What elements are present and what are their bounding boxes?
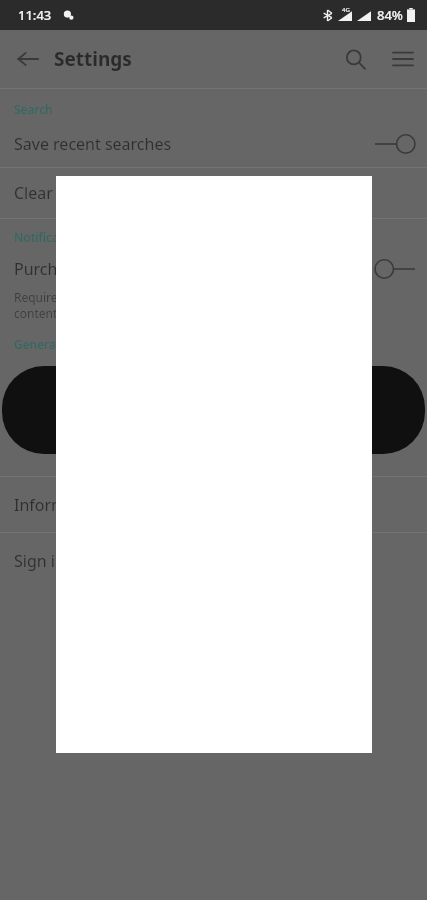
staticText: 84% bbox=[377, 6, 403, 24]
button[interactable]: Purchases bbox=[0, 249, 427, 289]
button[interactable]: Back bbox=[6, 37, 50, 81]
staticText: Search bbox=[14, 101, 53, 117]
staticText: Save recent searches bbox=[14, 133, 172, 155]
staticText: Required to receive notifications about … bbox=[14, 289, 295, 322]
button[interactable]: Information bbox=[0, 477, 427, 532]
staticText: General bbox=[14, 336, 59, 352]
staticText: Settings bbox=[54, 46, 132, 72]
button[interactable]: Save recent searches bbox=[0, 121, 427, 167]
staticText: Purchases bbox=[14, 258, 91, 280]
staticText: Clear recent searches bbox=[14, 182, 176, 204]
staticText: Sign in bbox=[14, 550, 65, 572]
button[interactable]: Sign in bbox=[0, 533, 427, 588]
staticText: 4G bbox=[342, 6, 350, 14]
button[interactable]: Menu bbox=[379, 35, 427, 83]
staticText: Information bbox=[14, 494, 105, 516]
staticText: 11:43 bbox=[18, 6, 52, 24]
button[interactable]: Clear recent searches bbox=[0, 168, 427, 218]
staticText: Notifications bbox=[14, 229, 88, 245]
button[interactable]: Search bbox=[331, 35, 379, 83]
